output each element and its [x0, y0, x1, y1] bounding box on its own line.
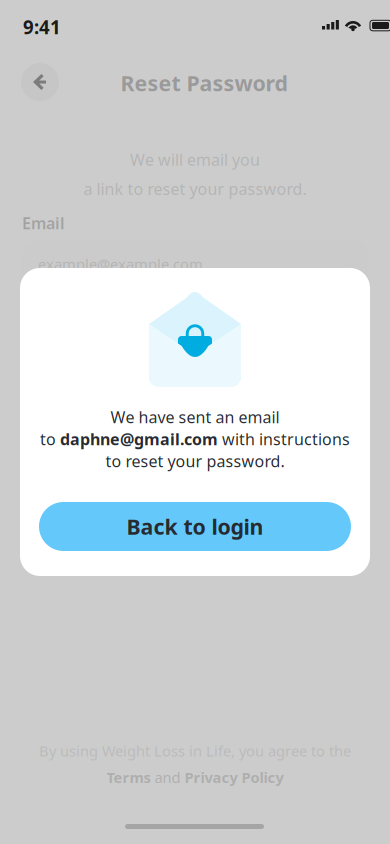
staticText: a link to reset your password. — [83, 178, 306, 199]
staticText: Terms and Privacy Policy — [106, 767, 283, 787]
staticText: example@example.com — [38, 254, 203, 274]
staticText: By using Weight Loss in Life, you agree … — [39, 741, 351, 760]
staticText: We have sent an email — [110, 406, 279, 428]
staticText: to daphne@gmail.com with instructions — [40, 428, 350, 450]
staticText: 9:41 — [23, 15, 61, 39]
staticText: Back to login — [126, 512, 263, 541]
staticText: to reset your password. — [105, 450, 284, 472]
button[interactable]: Back to login — [39, 502, 351, 551]
staticText: Reset Password — [120, 69, 287, 97]
staticText: We will email you — [130, 149, 260, 170]
staticText: Email — [22, 212, 65, 234]
